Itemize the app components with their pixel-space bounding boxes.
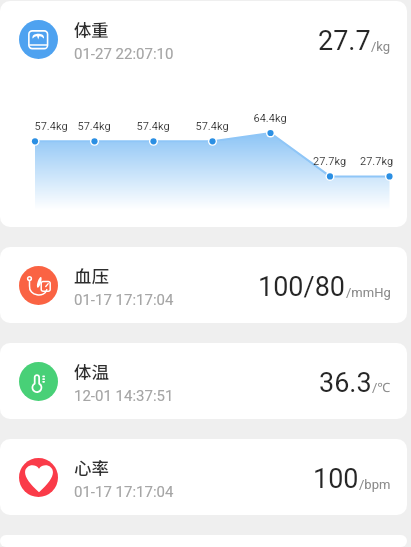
- staticText: 血压: [74, 263, 109, 288]
- staticText: 心率: [74, 455, 109, 480]
- staticText: 01-27 22:07:10: [74, 45, 174, 63]
- staticText: 01-17 17:17:04: [74, 291, 174, 309]
- staticText: 体重: [74, 17, 109, 42]
- staticText: 体温: [74, 359, 109, 384]
- button[interactable]: Blood pressure: [0, 247, 407, 323]
- button[interactable]: Heart rate: [0, 439, 407, 515]
- button[interactable]: Weight: [0, 1, 407, 227]
- staticText: 100/80: [258, 271, 346, 303]
- other: Weight: [19, 20, 58, 59]
- other: Heart rate: [19, 458, 58, 497]
- staticText: 01-17 17:17:04: [74, 483, 174, 501]
- staticText: 12-01 14:37:51: [74, 387, 174, 405]
- other: Blood pressure: [19, 266, 58, 305]
- staticText: /℃: [372, 378, 391, 396]
- staticText: /mmHg: [346, 285, 391, 300]
- other: Temperature: [19, 362, 58, 401]
- staticText: 100: [313, 463, 359, 495]
- staticText: 36.3: [319, 367, 372, 399]
- staticText: /kg: [371, 39, 391, 54]
- staticText: 27.7: [318, 25, 371, 57]
- button[interactable]: Temperature: [0, 343, 407, 419]
- staticText: /bpm: [359, 477, 391, 492]
